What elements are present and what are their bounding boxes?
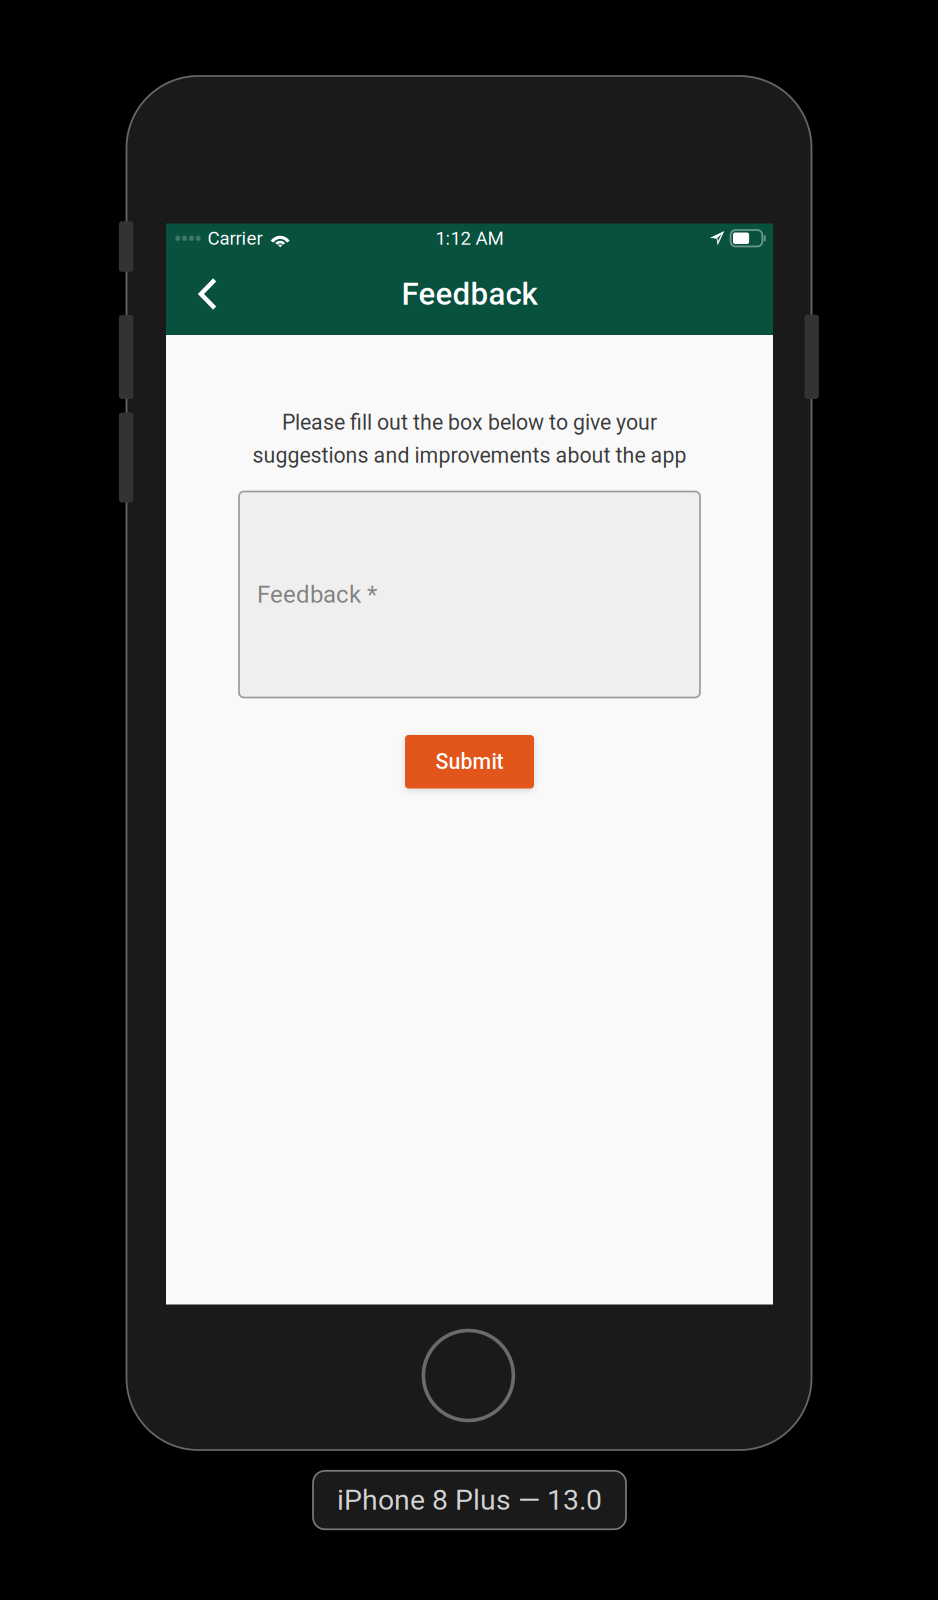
staticText: Feedback *: [257, 580, 377, 608]
staticText: Feedback: [401, 276, 537, 312]
staticText: suggestions and improvements about the a…: [252, 443, 686, 468]
staticText: iPhone 8 Plus — 13.0: [337, 1483, 602, 1517]
button[interactable]: Back: [176, 263, 238, 325]
staticText: Submit: [435, 749, 503, 774]
staticText: Please fill out the box below to give yo…: [282, 410, 657, 435]
staticText: Carrier: [207, 227, 262, 249]
staticText: 1:12 AM: [435, 227, 503, 249]
button[interactable]: Submit: [405, 735, 534, 788]
